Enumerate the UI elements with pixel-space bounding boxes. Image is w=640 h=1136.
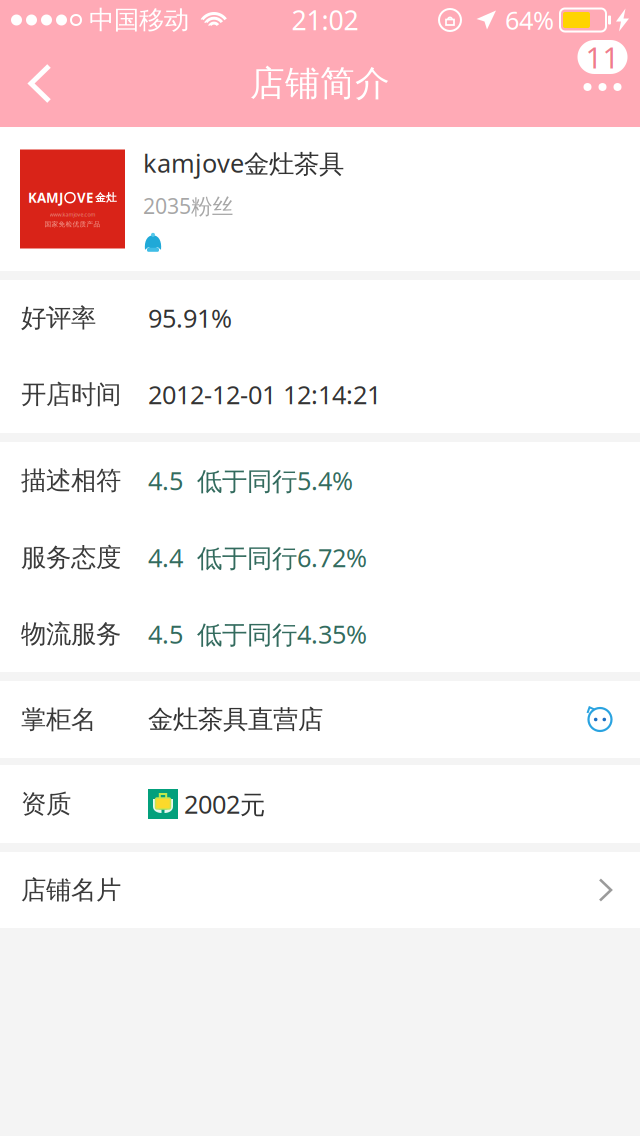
staticText: 95.91% bbox=[148, 301, 232, 335]
staticText: www.kamjove.com bbox=[49, 211, 95, 218]
staticText: VE bbox=[77, 189, 93, 207]
button[interactable]: 掌柜名 bbox=[0, 681, 640, 758]
staticText: 低于同行5.4% bbox=[197, 463, 353, 498]
staticText: 低于同行6.72% bbox=[197, 540, 367, 575]
staticText: 物流服务 bbox=[21, 618, 121, 650]
staticText: 4.4 bbox=[148, 540, 183, 575]
staticText: kamjove金灶茶具 bbox=[143, 146, 344, 180]
staticText: 2035粉丝 bbox=[143, 191, 233, 220]
button[interactable]: 店铺名片 bbox=[0, 852, 640, 928]
staticText: 中国移动 bbox=[89, 4, 189, 36]
button[interactable]: More options bbox=[571, 40, 640, 127]
staticText: 64% bbox=[505, 3, 554, 37]
staticText: 2012-12-01 12:14:21 bbox=[148, 377, 381, 412]
staticText: 低于同行4.35% bbox=[197, 617, 367, 651]
staticText: 金灶 bbox=[95, 191, 117, 204]
staticText: 国家免检优质产品 bbox=[44, 220, 100, 228]
staticText: 店铺名片 bbox=[21, 874, 121, 906]
staticText: 开店时间 bbox=[21, 378, 121, 410]
staticText: KAMJ bbox=[28, 189, 63, 207]
staticText: 描述相符 bbox=[21, 464, 121, 496]
staticText: 好评率 bbox=[21, 302, 96, 334]
staticText: 资质 bbox=[21, 788, 71, 820]
staticText: 2002元 bbox=[184, 787, 265, 821]
staticText: 店铺简介 bbox=[250, 62, 390, 105]
button[interactable]: Back bbox=[0, 40, 80, 127]
staticText: 服务态度 bbox=[21, 541, 121, 573]
staticText: 11 bbox=[585, 37, 619, 77]
staticText: 4.5 bbox=[148, 617, 183, 651]
staticText: 掌柜名 bbox=[21, 703, 96, 735]
staticText: 金灶茶具直营店 bbox=[148, 703, 323, 735]
staticText: 21:02 bbox=[291, 2, 358, 38]
staticText: 4.5 bbox=[148, 463, 183, 498]
